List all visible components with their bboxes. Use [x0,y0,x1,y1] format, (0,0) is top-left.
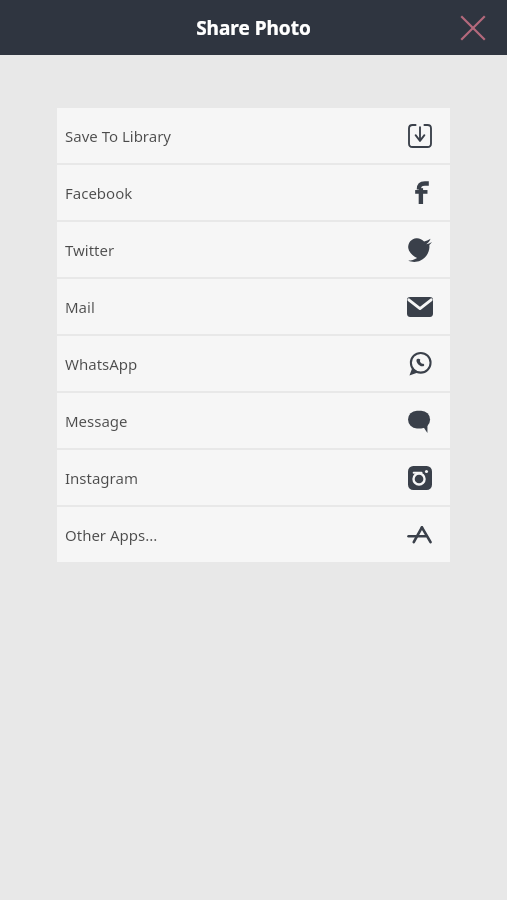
button[interactable]: Close [450,5,496,51]
staticText: Facebook [65,183,133,203]
button[interactable]: Twitter [57,222,450,277]
button[interactable]: Save To Library [57,108,450,163]
staticText: WhatsApp [65,354,138,374]
staticText: Other Apps... [65,525,158,545]
button[interactable]: Instagram [57,450,450,505]
button[interactable]: WhatsApp [57,336,450,391]
staticText: Instagram [65,468,138,488]
staticText: Message [65,411,128,431]
button[interactable]: Message [57,393,450,448]
button[interactable]: Mail [57,279,450,334]
staticText: Share Photo [196,15,311,41]
button[interactable]: Other Apps... [57,507,450,562]
button[interactable]: Facebook [57,165,450,220]
staticText: Save To Library [65,126,172,146]
staticText: Twitter [65,240,115,260]
staticText: Mail [65,297,95,317]
